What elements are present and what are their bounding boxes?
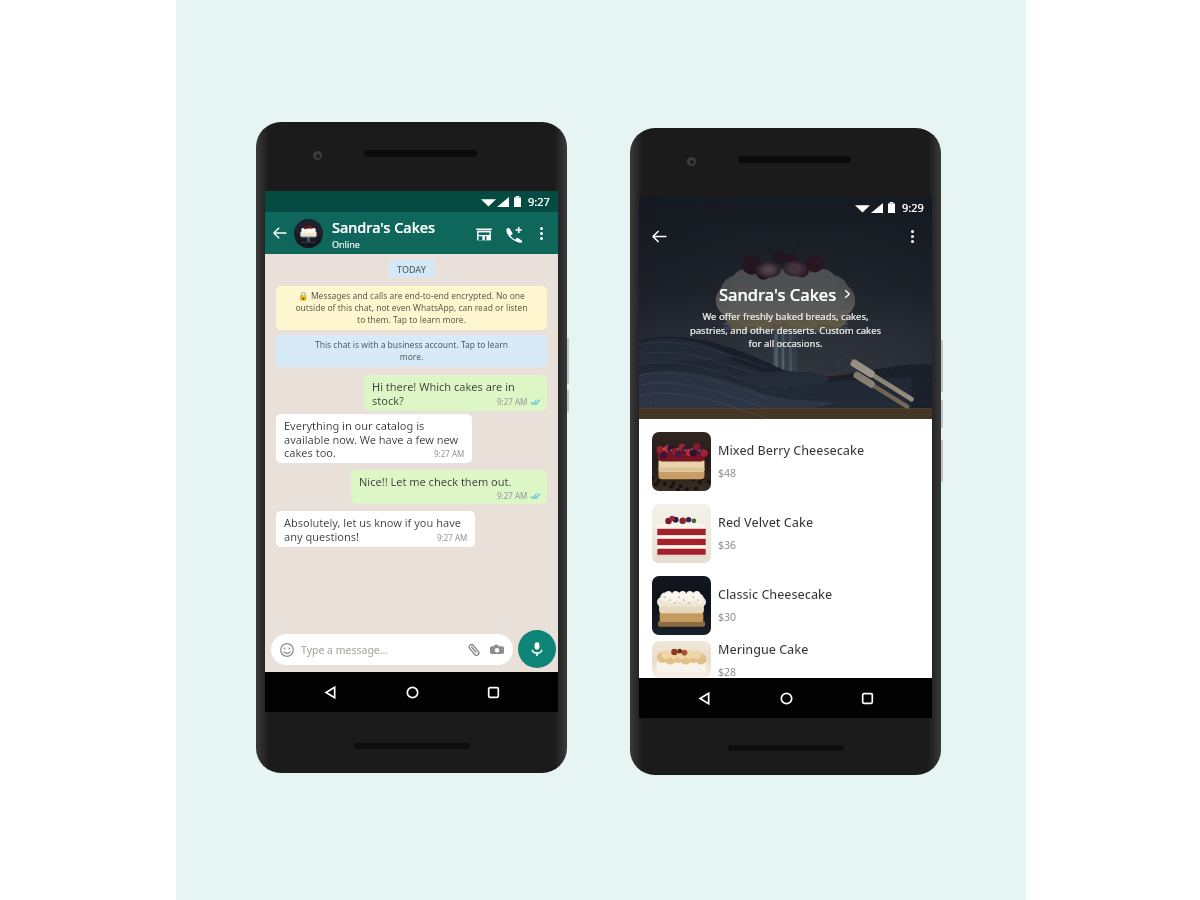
button[interactable]: Recent apps [476, 675, 510, 709]
staticText: Mixed Berry Cheesecake [718, 442, 865, 459]
button[interactable]: Classic Cheesecake [639, 569, 932, 641]
staticText: Red Velvet Cake [718, 514, 814, 531]
button[interactable]: Sandra's Cakes [639, 283, 932, 305]
button[interactable]: More options [898, 222, 926, 250]
staticText: $30 [718, 610, 737, 624]
button[interactable]: Profile photo [294, 219, 323, 248]
staticText: TODAY [397, 263, 426, 275]
button[interactable]: Back [267, 220, 293, 246]
staticText: Type a message… [301, 643, 389, 657]
staticText: We offer freshly baked breads, cakes, pa… [683, 310, 888, 349]
staticText: $36 [718, 538, 737, 552]
staticText: Hi there! Which cakes are in stock? [372, 379, 540, 408]
button[interactable]: Back [313, 675, 347, 709]
button[interactable]: Catalog [470, 220, 497, 247]
staticText: Nice!! Let me check them out. [359, 474, 512, 489]
staticText: Classic Cheesecake [718, 586, 833, 603]
staticText: Meringue Cake [718, 641, 809, 658]
button[interactable]: Red Velvet Cake [639, 497, 932, 569]
staticText: Sandra's Cakes [719, 283, 837, 305]
button[interactable]: This chat is with a business account. Ta… [276, 335, 547, 367]
button[interactable]: Call [500, 220, 527, 247]
button[interactable]: Nice!! Let me check them out. [351, 470, 547, 504]
staticText: Absolutely, let us know if you have any … [284, 515, 468, 544]
button[interactable]: Back [644, 221, 674, 251]
staticText: 9:29 [902, 200, 924, 215]
staticText: 9:27 [528, 194, 550, 209]
button[interactable]: Everything in our catalog is available n… [276, 414, 472, 463]
button[interactable]: Home [395, 675, 429, 709]
staticText: This chat is with a business account. Ta… [307, 339, 516, 363]
button[interactable]: Mixed Berry Cheesecake [639, 425, 932, 497]
button[interactable]: Recent apps [850, 681, 884, 715]
button[interactable]: Hi there! Which cakes are in stock? [364, 375, 547, 411]
button[interactable]: Absolutely, let us know if you have any … [276, 511, 475, 547]
button[interactable]: Camera [490, 643, 504, 657]
staticText: 9:27 AM [497, 396, 528, 407]
staticText: 🔒 Messages and calls are end-to-end encr… [292, 290, 531, 326]
button[interactable]: Emoji [271, 634, 513, 665]
staticText: 9:27 AM [437, 532, 468, 543]
button[interactable]: Back [687, 681, 721, 715]
staticText: 9:27 AM [497, 490, 528, 501]
button[interactable]: Record voice message [518, 630, 556, 668]
staticText: $48 [718, 466, 737, 480]
staticText: Online [332, 238, 360, 250]
button[interactable]: Meringue Cake [639, 641, 932, 678]
staticText: Everything in our catalog is available n… [284, 418, 465, 460]
button[interactable]: 🔒 Messages and calls are end-to-end encr… [276, 286, 547, 330]
button[interactable]: Emoji [280, 643, 294, 657]
button[interactable]: Attach [467, 643, 481, 657]
staticText: Sandra's Cakes [332, 217, 436, 237]
staticText: 9:27 AM [434, 448, 465, 459]
staticText: $28 [718, 665, 737, 678]
button[interactable]: Home [769, 681, 803, 715]
button[interactable]: More options [529, 221, 553, 245]
